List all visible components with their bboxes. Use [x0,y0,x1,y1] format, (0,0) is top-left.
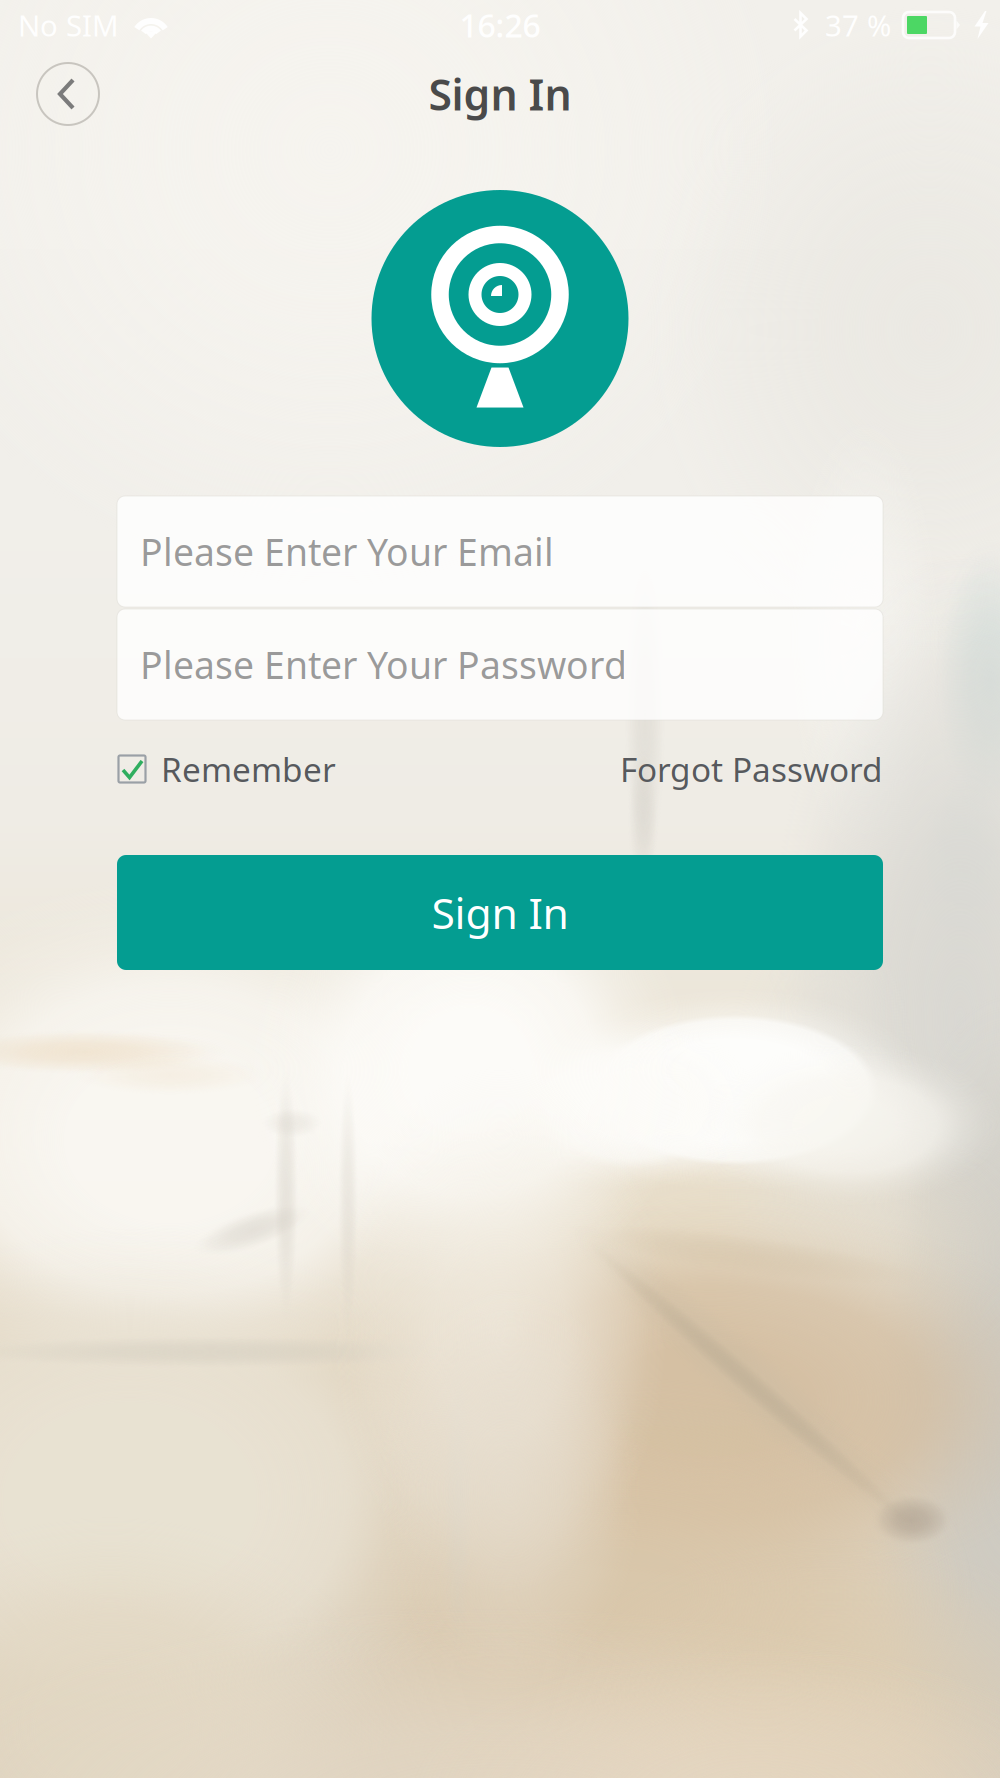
staticText: Please Enter Your Password [140,640,627,689]
staticText: 16:26 [459,4,540,46]
button[interactable]: Please Enter Your Password [117,609,883,720]
staticText: Remember [161,747,336,791]
staticText: Sign In [428,66,571,122]
staticText: Forgot Password [620,747,883,791]
button[interactable]: Please Enter Your Email [117,496,883,607]
button[interactable]: Back [25,51,111,137]
staticText: No SIM [18,5,119,44]
button[interactable]: Sign In [117,855,883,970]
staticText: Sign In [431,884,568,941]
button[interactable]: Remember [117,745,336,793]
staticText: Please Enter Your Email [140,527,554,576]
staticText: 37 % [825,5,891,44]
button[interactable]: Forgot Password [620,745,883,793]
